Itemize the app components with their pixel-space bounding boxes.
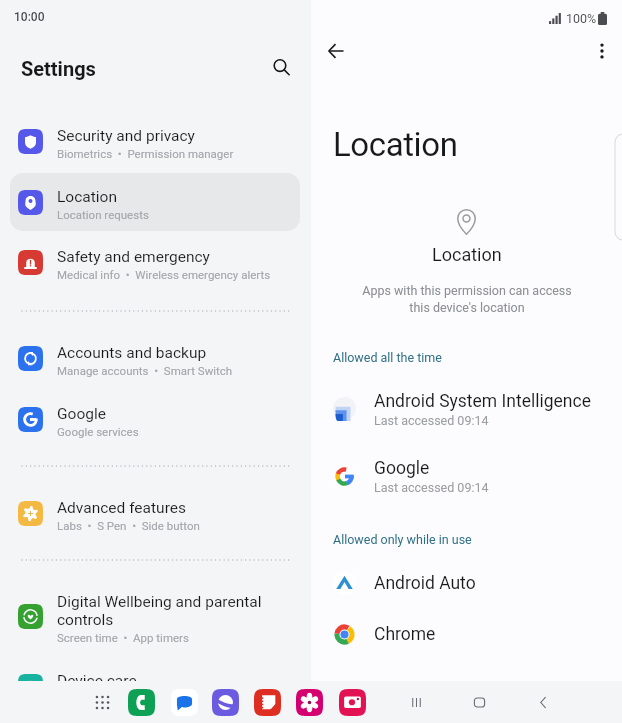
- button[interactable]: Safety and emergency: [10, 233, 300, 291]
- staticText: Location: [333, 125, 458, 164]
- button[interactable]: Android Auto: [311, 559, 622, 607]
- staticText: Location: [432, 244, 502, 265]
- button[interactable]: Google: [10, 390, 300, 448]
- button[interactable]: Security and privacy: [10, 112, 300, 170]
- button[interactable]: Google: [311, 452, 622, 500]
- button[interactable]: Allowed only while in use: [333, 532, 472, 547]
- button[interactable]: Back: [319, 34, 353, 68]
- staticText: Chrome: [374, 624, 436, 645]
- button[interactable]: Location: [10, 173, 300, 231]
- button[interactable]: Android System Intelligence: [311, 385, 622, 433]
- staticText: Android System Intelligence: [374, 391, 591, 412]
- staticText: Settings: [21, 57, 96, 80]
- staticText: Apps with this permission can access thi…: [362, 283, 572, 315]
- staticText: Last accessed 09:14: [374, 413, 489, 428]
- staticText: Labs • S Pen • Side button: [57, 519, 200, 532]
- button[interactable]: Notes: [250, 685, 284, 719]
- staticText: Storage • Memory: [57, 692, 155, 705]
- button[interactable]: Accounts and backup: [10, 329, 300, 387]
- button[interactable]: Advanced features: [10, 484, 300, 542]
- staticText: Google: [374, 458, 430, 479]
- staticText: Biometrics • Permission manager: [57, 147, 234, 160]
- staticText: Safety and emergency: [57, 248, 210, 266]
- staticText: Location requests: [57, 208, 149, 221]
- button[interactable]: More options: [587, 36, 617, 66]
- staticText: 10:00: [14, 10, 45, 24]
- button[interactable]: Chrome: [311, 610, 622, 658]
- button[interactable]: Digital Wellbeing and parental controls: [10, 587, 300, 645]
- button[interactable]: Messages: [167, 685, 201, 719]
- button[interactable]: Phone: [124, 685, 158, 719]
- staticText: Advanced features: [57, 499, 186, 517]
- button[interactable]: Device care: [10, 657, 300, 715]
- staticText: Google: [57, 405, 106, 423]
- button[interactable]: Gallery: [292, 685, 326, 719]
- staticText: Last accessed 09:14: [374, 480, 489, 495]
- button[interactable]: Search: [266, 52, 296, 82]
- button[interactable]: Allowed all the time: [333, 350, 442, 365]
- staticText: Digital Wellbeing and parental controls: [57, 593, 295, 629]
- button[interactable]: Apps: [87, 687, 117, 717]
- button[interactable]: Home: [462, 685, 496, 719]
- button[interactable]: Camera: [335, 685, 369, 719]
- staticText: Location: [57, 188, 117, 206]
- staticText: Security and privacy: [57, 127, 195, 145]
- staticText: Google services: [57, 425, 139, 438]
- staticText: Device care: [57, 672, 137, 690]
- staticText: Accounts and backup: [57, 344, 207, 362]
- staticText: Medical info • Wireless emergency alerts: [57, 268, 271, 281]
- button[interactable]: Back: [526, 685, 560, 719]
- staticText: Screen time • App timers: [57, 631, 189, 644]
- button[interactable]: Internet: [208, 685, 242, 719]
- button[interactable]: Recent apps: [399, 685, 433, 719]
- staticText: Android Auto: [374, 573, 476, 594]
- staticText: Manage accounts • Smart Switch: [57, 364, 233, 377]
- staticText: 100%: [566, 11, 597, 26]
